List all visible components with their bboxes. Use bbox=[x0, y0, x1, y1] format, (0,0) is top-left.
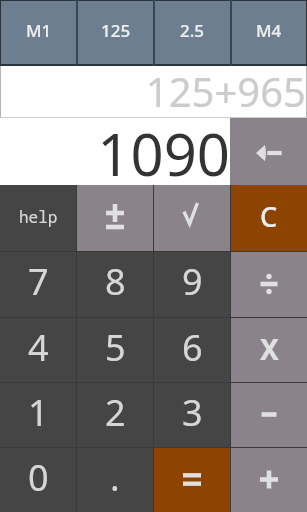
button[interactable]: 125 bbox=[78, 1, 153, 64]
button[interactable]: 4 bbox=[0, 318, 76, 382]
staticText: 9 bbox=[182, 257, 203, 306]
button[interactable]: . bbox=[77, 448, 153, 512]
button[interactable]: Plus minus bbox=[77, 185, 153, 251]
staticText: 3 bbox=[182, 388, 203, 437]
staticText: 5 bbox=[105, 323, 126, 372]
staticText: C bbox=[260, 198, 278, 235]
staticText: 1 bbox=[28, 388, 49, 437]
button[interactable]: 9 bbox=[154, 252, 230, 317]
staticText: 6 bbox=[182, 323, 203, 372]
button[interactable]: C bbox=[231, 185, 307, 251]
button[interactable]: 7 bbox=[0, 252, 76, 317]
button[interactable]: X bbox=[231, 318, 307, 382]
staticText: M4 bbox=[256, 19, 282, 42]
button[interactable]: Minus bbox=[231, 383, 307, 447]
button[interactable]: Divide bbox=[231, 252, 307, 317]
staticText: 7 bbox=[28, 257, 49, 306]
button[interactable]: 1 bbox=[0, 383, 76, 447]
button[interactable]: Plus bbox=[231, 448, 307, 512]
staticText: 2.5 bbox=[180, 19, 205, 42]
staticText: 0 bbox=[28, 453, 49, 502]
button[interactable]: 8 bbox=[77, 252, 153, 317]
button[interactable]: M4 bbox=[232, 1, 306, 64]
button[interactable]: 0 bbox=[0, 448, 76, 512]
button[interactable]: M1 bbox=[1, 1, 76, 64]
staticText: help bbox=[19, 206, 58, 228]
staticText: 125 bbox=[101, 19, 131, 42]
button[interactable]: 2 bbox=[77, 383, 153, 447]
button[interactable]: 2.5 bbox=[155, 1, 230, 64]
button[interactable]: Equals bbox=[154, 448, 230, 512]
staticText: 4 bbox=[28, 323, 49, 372]
button[interactable]: 5 bbox=[77, 318, 153, 382]
button[interactable]: 3 bbox=[154, 383, 230, 447]
button[interactable]: Square root bbox=[154, 185, 230, 251]
staticText: M1 bbox=[26, 19, 52, 42]
staticText: . bbox=[110, 453, 120, 502]
button[interactable]: Backspace bbox=[230, 118, 307, 185]
staticText: X bbox=[260, 330, 279, 368]
staticText: 125+965 bbox=[145, 64, 306, 115]
staticText: 1090 bbox=[97, 114, 230, 181]
staticText: 8 bbox=[105, 257, 126, 306]
button[interactable]: 6 bbox=[154, 318, 230, 382]
button[interactable]: help bbox=[0, 185, 76, 251]
staticText: 2 bbox=[105, 388, 126, 437]
